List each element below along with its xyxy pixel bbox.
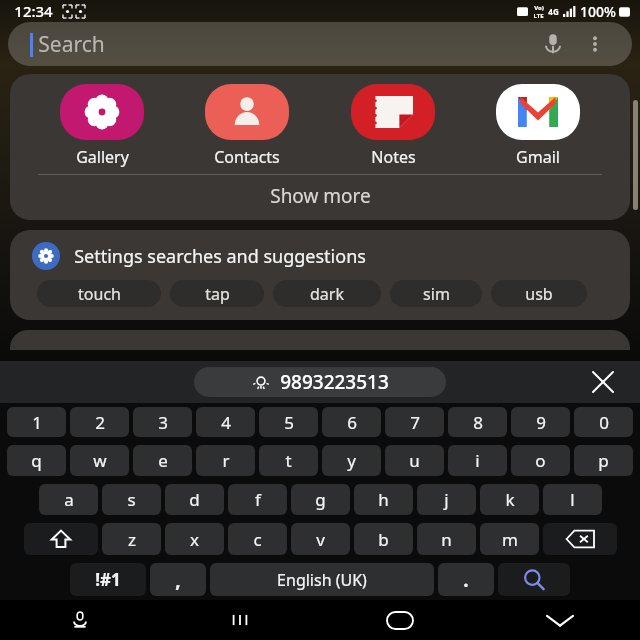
button[interactable]: o [511,445,570,476]
button[interactable]: Close suggestion [586,365,620,399]
button[interactable]: , [150,563,206,596]
button[interactable]: English (UK) [210,563,434,596]
button[interactable]: usb [491,280,587,307]
staticText: Contacts [214,146,280,168]
staticText: u [409,449,420,472]
staticText: g [315,488,326,511]
staticText: LTE [533,12,544,20]
staticText: 9 [536,411,546,434]
button[interactable]: Voice search [536,27,570,61]
button[interactable]: z [102,523,161,555]
button[interactable]: q [7,445,66,476]
button[interactable]: 3 [133,407,192,437]
staticText: 0 [599,411,609,434]
staticText: 100% [580,2,616,21]
button[interactable]: Backspace [543,523,617,555]
staticText: 8 [473,411,483,434]
button[interactable]: 6 [322,407,381,437]
staticText: w [93,449,107,472]
button[interactable]: !#1 [70,563,146,596]
staticText: touch [78,283,121,305]
staticText: t [285,449,292,472]
staticText: sim [423,283,450,305]
button[interactable]: 0 [574,407,633,437]
button[interactable]: e [133,445,192,476]
button[interactable]: s [102,484,161,515]
button[interactable]: v [291,523,350,555]
staticText: Search [38,30,105,59]
button[interactable]: h [354,484,413,515]
button[interactable]: u [385,445,444,476]
staticText: dark [310,283,344,305]
button[interactable]: 2 [70,407,129,437]
button[interactable]: Show more [10,175,630,217]
button[interactable]: 8 [448,407,507,437]
button[interactable]: Hide keyboard [480,600,640,640]
button[interactable]: g [291,484,350,515]
button[interactable]: touch [37,280,161,307]
staticText: i [475,449,480,472]
staticText: !#1 [95,568,121,591]
button[interactable]: 9 [511,407,570,437]
button[interactable]: Contacts [193,84,301,168]
staticText: q [31,449,42,472]
button[interactable]: sim [390,280,482,307]
staticText: usb [525,283,553,305]
button[interactable]: t [259,445,318,476]
staticText: e [158,449,168,472]
button[interactable]: r [196,445,255,476]
button[interactable]: p [574,445,633,476]
button[interactable]: 1 [7,407,66,437]
button[interactable]: w [70,445,129,476]
button[interactable]: k [480,484,539,515]
button[interactable]: x [165,523,224,555]
button[interactable]: Gallery [48,84,156,168]
button[interactable]: dark [273,280,381,307]
button[interactable]: Settings searches and suggestions [32,242,366,270]
staticText: Settings searches and suggestions [74,244,366,269]
staticText: Notes [371,146,416,168]
button[interactable]: 5 [259,407,318,437]
button[interactable]: Voice input [0,600,160,640]
button[interactable]: Notes [339,84,447,168]
staticText: v [316,528,325,551]
staticText: English (UK) [277,569,367,591]
button[interactable]: m [480,523,539,555]
button[interactable]: Recent apps [160,600,320,640]
button[interactable]: 9893223513 [194,367,446,397]
button[interactable]: Home [320,600,480,640]
staticText: d [189,488,200,511]
button[interactable]: Search [8,22,632,66]
button[interactable]: f [228,484,287,515]
button[interactable]: Shift [24,523,98,555]
staticText: x [190,528,199,551]
staticText: y [347,449,356,472]
button[interactable]: More options [578,27,612,61]
button[interactable]: y [322,445,381,476]
button[interactable]: c [228,523,287,555]
button[interactable]: tap [170,280,264,307]
button[interactable]: d [165,484,224,515]
button[interactable]: l [543,484,602,515]
staticText: 2 [95,411,105,434]
button[interactable]: 7 [385,407,444,437]
staticText: n [441,528,452,551]
button[interactable]: a [39,484,98,515]
staticText: 5 [284,411,294,434]
staticText: c [253,528,262,551]
staticText: 4G [548,6,559,17]
staticText: r [222,449,230,472]
button[interactable]: b [354,523,413,555]
button[interactable]: n [417,523,476,555]
button[interactable]: Search [498,563,570,596]
staticText: 7 [410,411,420,434]
button[interactable]: 4 [196,407,255,437]
button[interactable]: Gmail [484,84,592,168]
button[interactable]: . [438,563,494,596]
staticText: b [378,528,389,551]
staticText: , [175,567,181,593]
button[interactable]: i [448,445,507,476]
staticText: z [128,528,136,551]
staticText: f [255,488,261,511]
button[interactable]: j [417,484,476,515]
